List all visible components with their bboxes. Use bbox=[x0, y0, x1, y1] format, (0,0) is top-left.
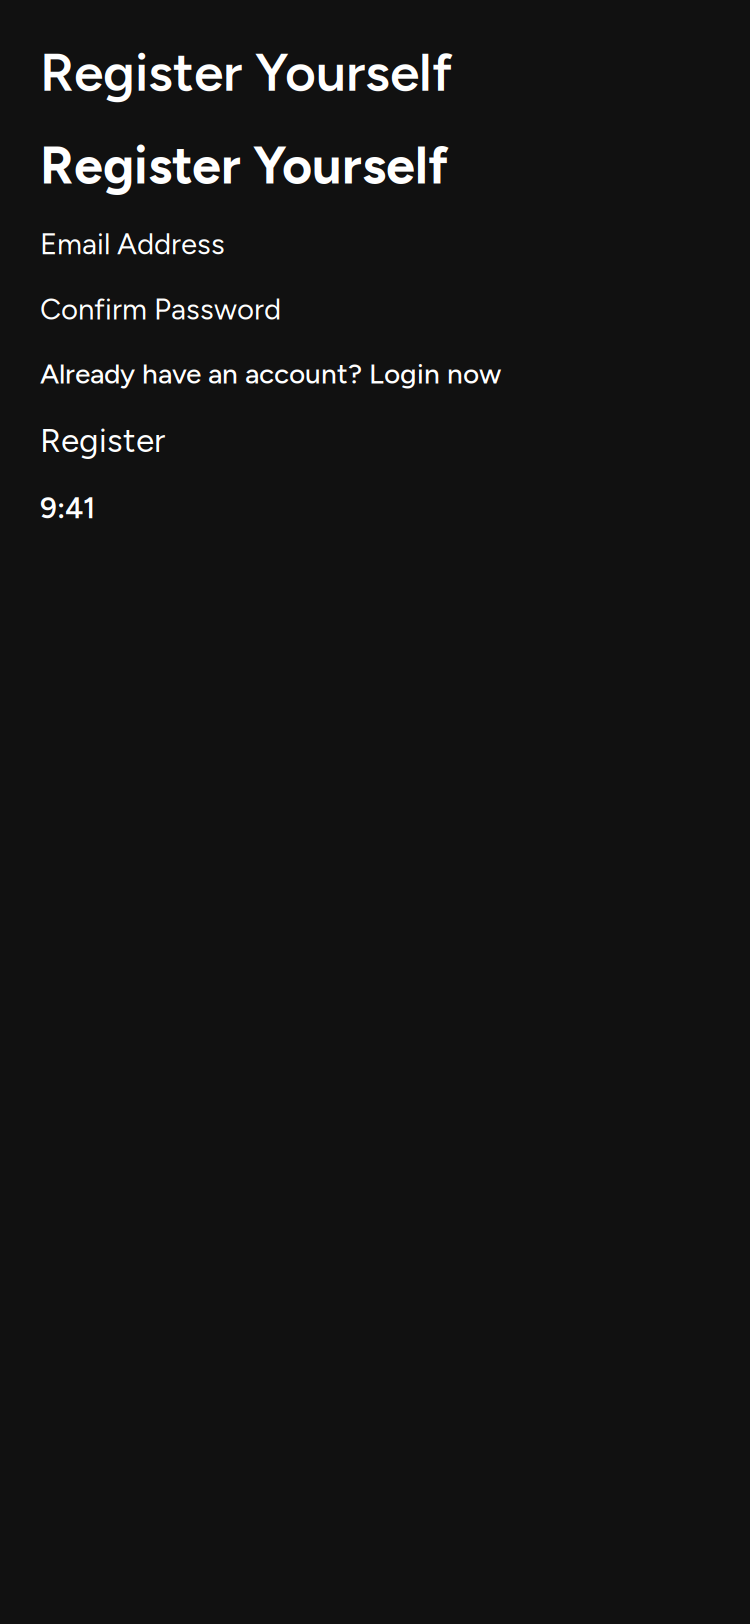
staticText: Confirm Password bbox=[40, 292, 281, 327]
staticText: Register bbox=[40, 420, 165, 460]
staticText: Already have an account? Login now bbox=[40, 357, 501, 390]
staticText: Register Yourself bbox=[40, 40, 452, 104]
staticText: Email Address bbox=[40, 226, 225, 262]
staticText: Register Yourself bbox=[40, 134, 448, 196]
staticText: 9:41 bbox=[40, 490, 95, 526]
